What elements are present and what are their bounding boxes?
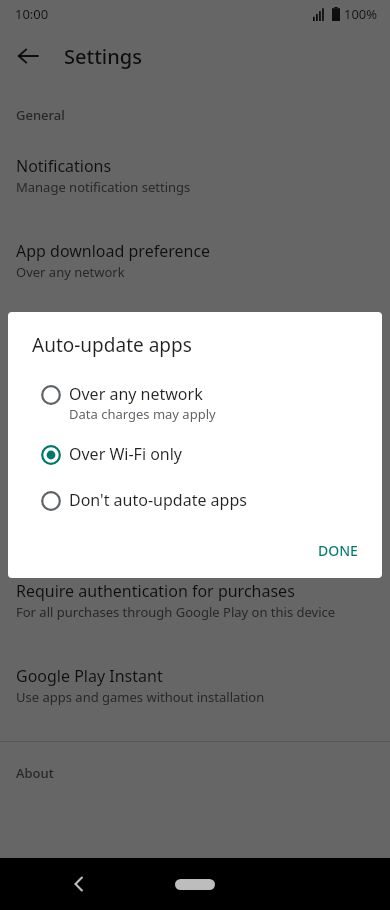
button[interactable]: Auto-update apps [0,310,390,381]
staticText: 10:00 [15,5,49,23]
staticText: Over any network [16,263,125,281]
button[interactable]: DONE [306,531,370,570]
staticText: Over Wi-Fi only [16,348,108,366]
button[interactable]: Notifications [0,140,390,211]
staticText: Don't auto-update apps [69,489,247,511]
button[interactable]: Over any network [8,375,382,431]
staticText: Notifications [16,155,112,177]
staticText: Use apps and games without installation [16,688,265,706]
button[interactable]: Auto-play videos [0,395,390,466]
staticText: For all purchases through Google Play on… [16,603,336,621]
staticText: DONE [318,541,358,560]
button[interactable]: Over Wi-Fi only [8,435,382,473]
button[interactable]: Back [58,862,102,906]
staticText: Auto-update apps [32,332,192,358]
staticText: Auto-play videos [16,410,141,432]
staticText: App download preference [16,240,211,262]
button[interactable]: Require authentication for purchases [0,565,390,636]
button[interactable]: Home [167,866,223,902]
staticText: Manage notification settings [16,178,191,196]
staticText: Settings [64,43,142,70]
button[interactable]: Parental controls [0,480,390,551]
staticText: Over any network [69,383,203,405]
staticText: 100% [344,5,378,23]
staticText: Data charges may apply [69,405,216,423]
staticText: About [16,764,54,782]
staticText: Require authentication for purchases [16,580,295,602]
button[interactable]: App download preference [0,225,390,296]
staticText: General [16,106,65,124]
staticText: Over Wi-Fi only [16,433,108,451]
staticText: Over Wi-Fi only [69,443,183,465]
staticText: Parental controls [16,495,144,517]
staticText: Google Play Instant [16,665,163,687]
button[interactable]: Google Play Instant [0,650,390,721]
staticText: Auto-update apps [16,325,151,347]
button[interactable]: Don't auto-update apps [8,481,382,519]
button[interactable]: Back [4,32,52,80]
